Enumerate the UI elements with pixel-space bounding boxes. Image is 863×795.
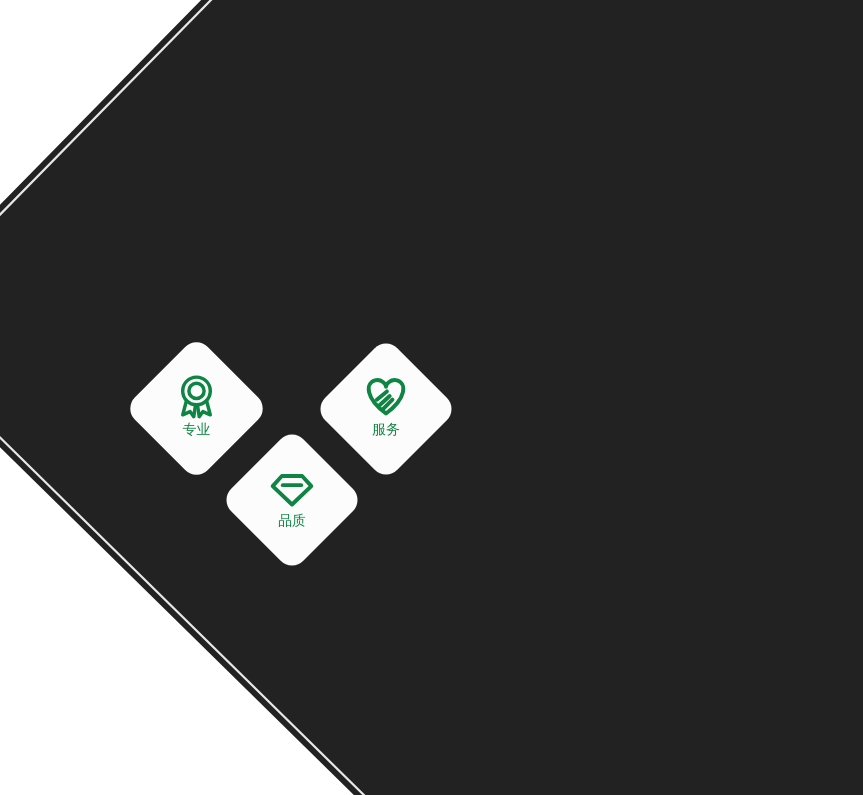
button[interactable]: 服务 xyxy=(335,358,437,460)
button[interactable]: 品质 xyxy=(241,449,343,551)
staticText: 专业 xyxy=(145,421,248,441)
button[interactable]: 专业 xyxy=(145,357,248,460)
staticText: 品质 xyxy=(241,512,343,532)
staticText: 服务 xyxy=(335,421,437,441)
